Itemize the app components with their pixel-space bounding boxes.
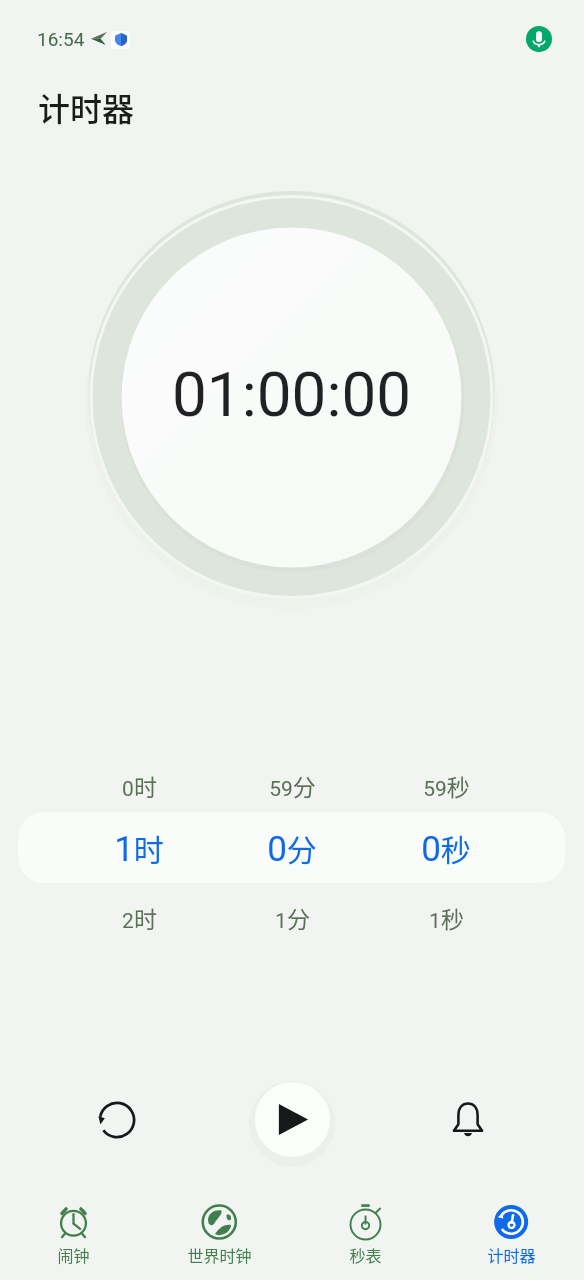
button[interactable]: Voice assistant [526, 26, 552, 52]
staticText: 0分 [267, 826, 317, 869]
button[interactable]: 59分 [222, 764, 362, 806]
button[interactable]: Reset [82, 1085, 152, 1155]
staticText: 0时 [122, 769, 157, 802]
staticText: 2时 [122, 901, 157, 934]
button[interactable]: Start timer [255, 1082, 330, 1157]
staticText: 1秒 [429, 901, 464, 934]
staticText: 世界时钟 [187, 1243, 252, 1265]
staticText: 计时器 [487, 1243, 536, 1265]
button[interactable]: Ringtone [433, 1085, 503, 1155]
staticText: 闹钟 [57, 1243, 90, 1265]
button[interactable]: 1秒 [376, 896, 516, 938]
staticText: 计时器 [38, 84, 135, 130]
staticText: 59分 [269, 769, 316, 802]
staticText: 秒表 [349, 1243, 382, 1265]
staticText: 0秒 [421, 826, 471, 869]
button[interactable]: 0时 [69, 764, 209, 806]
staticText: 01:00:00 [172, 358, 412, 431]
button[interactable]: 1时 [69, 813, 209, 882]
button[interactable]: 1分 [222, 896, 362, 938]
button[interactable]: 0分 [222, 813, 362, 882]
button[interactable]: 计时器 [438, 1196, 584, 1280]
button[interactable]: 秒表 [292, 1196, 438, 1280]
staticText: 1时 [114, 826, 164, 869]
staticText: 16:54 [37, 28, 85, 50]
button[interactable]: 2时 [69, 896, 209, 938]
button[interactable]: 0秒 [376, 813, 516, 882]
staticText: 59秒 [423, 769, 470, 802]
button[interactable]: 59秒 [376, 764, 516, 806]
button[interactable]: 闹钟 [0, 1196, 146, 1280]
button[interactable]: 世界时钟 [146, 1196, 292, 1280]
staticText: 1分 [275, 901, 310, 934]
